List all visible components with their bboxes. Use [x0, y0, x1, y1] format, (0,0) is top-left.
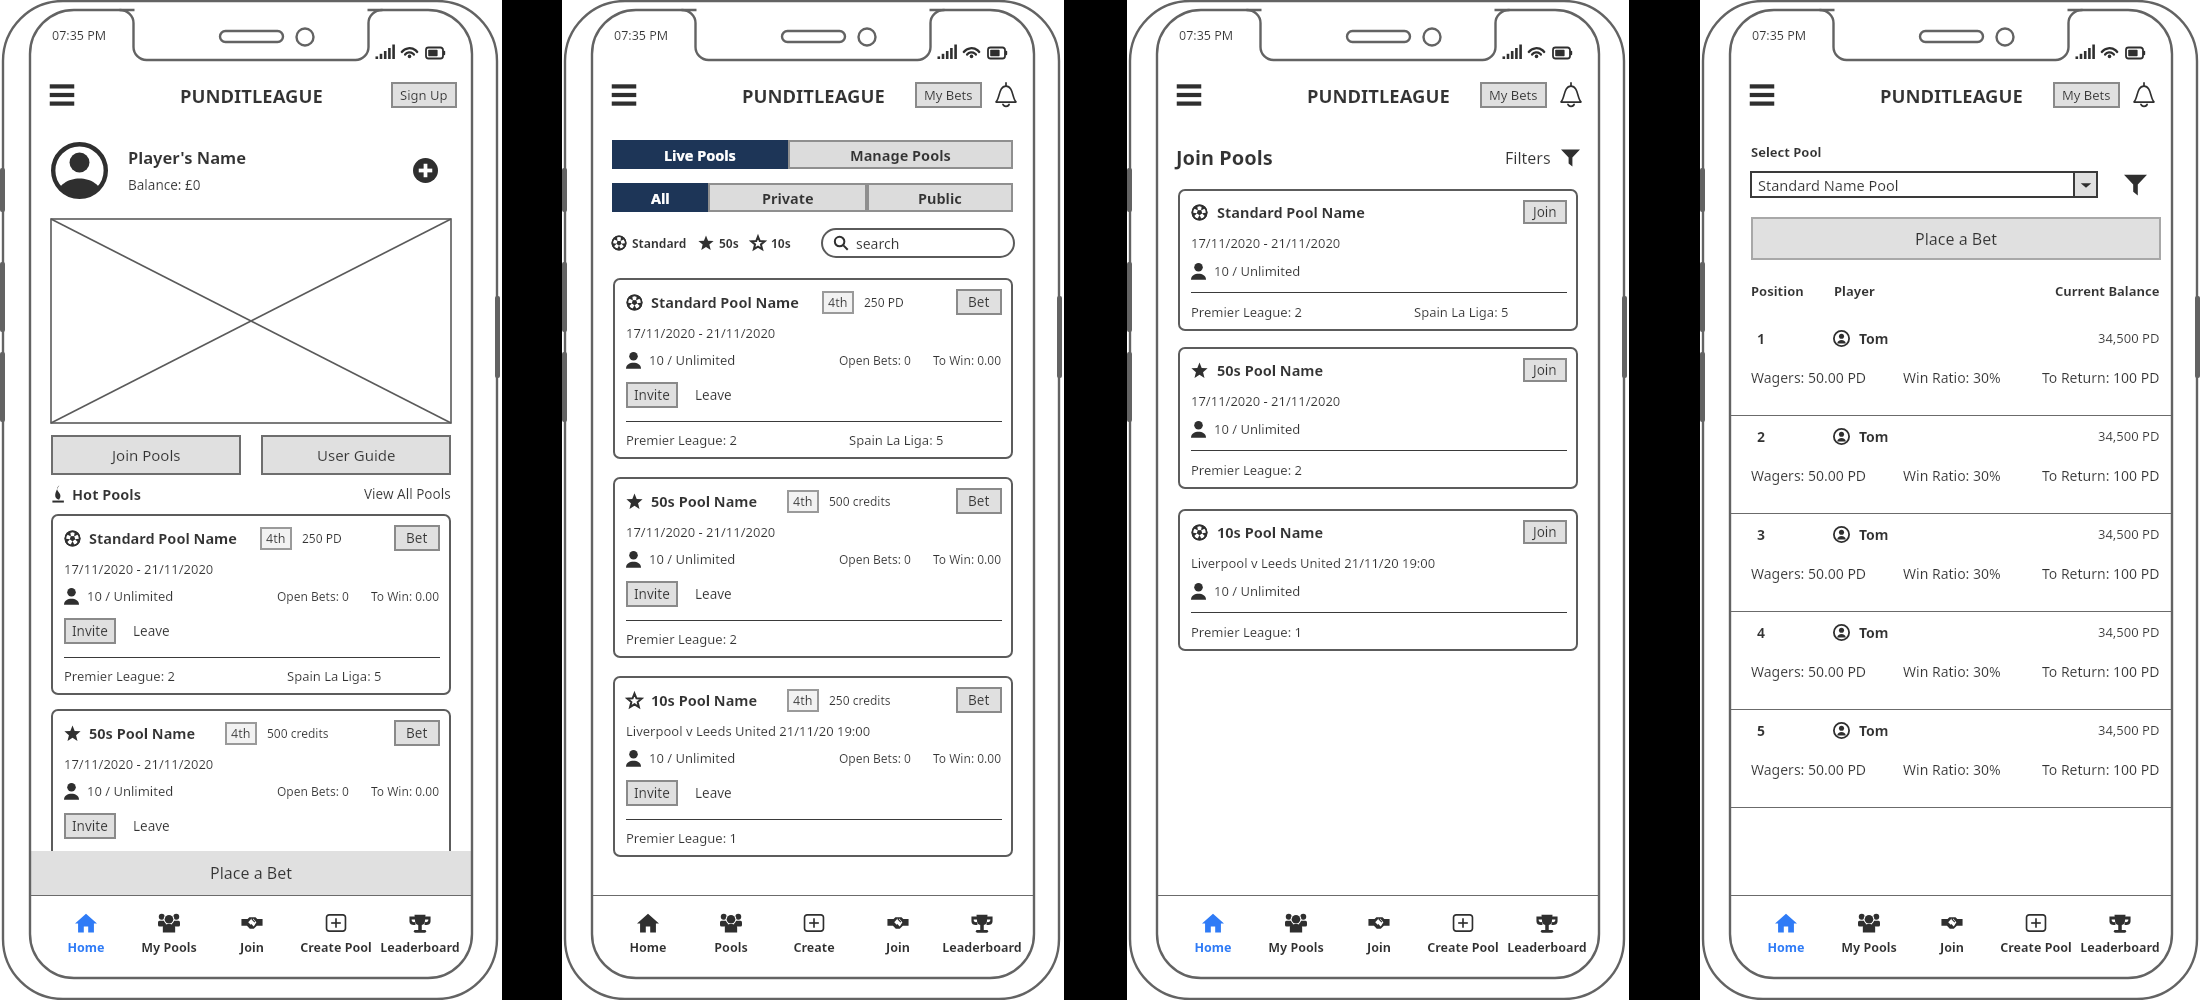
button[interactable]: Create Pool: [1421, 896, 1505, 978]
button[interactable]: Home: [44, 896, 127, 978]
button[interactable]: Join: [1523, 520, 1567, 544]
staticText: Tom: [1859, 623, 1889, 642]
button[interactable]: Notifications: [993, 82, 1019, 108]
staticText: To Return: 100 PD: [2042, 466, 2160, 485]
button[interactable]: Join: [1910, 896, 1994, 978]
staticText: Wagers: 50.00 PD: [1751, 760, 1903, 779]
button[interactable]: My Bets: [1480, 82, 1547, 108]
staticText: Leaderboard: [942, 939, 1022, 956]
button[interactable]: Live Pools: [612, 140, 788, 169]
button[interactable]: Invite: [64, 618, 116, 644]
staticText: 10 / Unlimited: [1214, 262, 1301, 280]
button[interactable]: Bet: [956, 289, 1002, 315]
button[interactable]: Bet: [394, 525, 440, 551]
button[interactable]: Home: [1744, 896, 1827, 978]
button[interactable]: 10s Pool Name: [1178, 509, 1578, 651]
button[interactable]: Leave: [695, 386, 732, 404]
button[interactable]: 10s Pool Name: [613, 676, 1013, 857]
button[interactable]: Join: [1523, 200, 1567, 224]
button[interactable]: 5: [1730, 710, 2172, 808]
button[interactable]: 3: [1730, 514, 2172, 612]
button[interactable]: 50s Pool Name: [613, 477, 1013, 658]
button[interactable]: Home: [606, 896, 689, 978]
button[interactable]: Place a Bet: [1751, 217, 2161, 260]
button[interactable]: Notifications: [2131, 82, 2157, 108]
button[interactable]: Invite: [626, 780, 678, 806]
button[interactable]: Menu: [45, 80, 79, 110]
staticText: 50s Pool Name: [1217, 360, 1324, 380]
button[interactable]: Join: [210, 896, 294, 978]
staticText: Filters: [1505, 147, 1551, 169]
button[interactable]: Standard Pool Name: [1178, 189, 1578, 331]
button[interactable]: My Pools: [127, 896, 210, 978]
button[interactable]: User Guide: [261, 435, 451, 475]
button[interactable]: Invite: [626, 382, 678, 408]
button[interactable]: My Bets: [915, 82, 982, 108]
button[interactable]: View All Pools: [364, 485, 451, 503]
button[interactable]: Create: [772, 896, 856, 978]
button[interactable]: Create Pool: [1994, 896, 2078, 978]
button[interactable]: Home: [1171, 896, 1254, 978]
button[interactable]: Bet: [956, 488, 1002, 514]
button[interactable]: Bet: [956, 687, 1002, 713]
button[interactable]: My Bets: [2053, 82, 2120, 108]
button[interactable]: Add funds: [413, 158, 438, 183]
button[interactable]: My Pools: [1827, 896, 1910, 978]
button[interactable]: 2: [1730, 416, 2172, 514]
staticText: Invite: [72, 622, 108, 640]
staticText: Premier League: 1: [1191, 623, 1302, 641]
staticText: 34,500 PD: [2098, 623, 2160, 641]
button[interactable]: Join: [856, 896, 940, 978]
button[interactable]: Menu: [1745, 80, 1779, 110]
button[interactable]: Join Pools: [51, 435, 241, 475]
button[interactable]: Leaderboard: [1505, 896, 1589, 978]
button[interactable]: All: [612, 183, 708, 212]
button[interactable]: Menu: [607, 80, 641, 110]
staticText: Spain La Liga: 5: [1414, 303, 1509, 321]
button[interactable]: Pools: [689, 896, 772, 978]
button[interactable]: Sign Up: [391, 82, 457, 108]
staticText: Standard Pool Name: [89, 528, 237, 548]
staticText: Player's Name: [128, 146, 247, 168]
button[interactable]: search: [821, 228, 1015, 258]
button[interactable]: Public: [867, 183, 1013, 212]
button[interactable]: Leave: [133, 622, 170, 640]
button[interactable]: Filter: [1561, 148, 1580, 167]
staticText: To Win: 0.00: [933, 750, 1002, 766]
button[interactable]: Create Pool: [294, 896, 378, 978]
staticText: To Win: 0.00: [371, 783, 440, 799]
button[interactable]: Menu: [1172, 80, 1206, 110]
button[interactable]: 4: [1730, 612, 2172, 710]
staticText: Win Ratio: 30%: [1903, 368, 2001, 387]
button[interactable]: Leaderboard: [378, 896, 462, 978]
button[interactable]: Place a Bet: [30, 851, 472, 895]
button[interactable]: Notifications: [1558, 82, 1584, 108]
staticText: Premier League: 2: [1191, 303, 1302, 321]
button[interactable]: 1: [1730, 318, 2172, 416]
button[interactable]: Manage Pools: [788, 140, 1013, 169]
button[interactable]: Leave: [133, 817, 170, 835]
button[interactable]: Leave: [695, 784, 732, 802]
staticText: 17/11/2020 - 21/11/2020: [1191, 392, 1341, 410]
staticText: 10s: [771, 235, 791, 251]
button[interactable]: Standard Pool Name: [51, 514, 451, 695]
button[interactable]: 50s Pool Name: [1178, 347, 1578, 489]
staticText: 50s Pool Name: [89, 723, 196, 743]
staticText: Home: [1194, 939, 1232, 956]
button[interactable]: Join: [1337, 896, 1421, 978]
button[interactable]: Invite: [64, 813, 116, 839]
button[interactable]: My Pools: [1254, 896, 1337, 978]
button[interactable]: Filters: [1505, 147, 1551, 169]
button[interactable]: Bet: [394, 720, 440, 746]
button[interactable]: Filter: [2124, 173, 2147, 196]
button[interactable]: 50s Pool Name: [51, 709, 451, 890]
button[interactable]: Private: [708, 183, 867, 212]
button[interactable]: Standard Name Pool: [1750, 171, 2098, 198]
button[interactable]: Leaderboard: [940, 896, 1024, 978]
button[interactable]: Standard Pool Name: [613, 278, 1013, 459]
button[interactable]: Leave: [695, 585, 732, 603]
button[interactable]: Invite: [626, 581, 678, 607]
staticText: Bet: [406, 724, 428, 742]
button[interactable]: Leaderboard: [2078, 896, 2162, 978]
button[interactable]: Join: [1523, 358, 1567, 382]
